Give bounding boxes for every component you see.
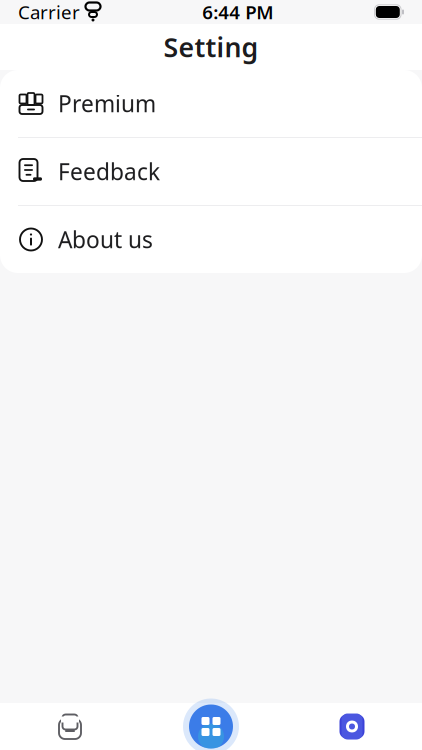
staticText: Setting (163, 29, 258, 65)
staticText: 6:44 PM (202, 0, 273, 24)
button[interactable]: Feedback (0, 138, 422, 205)
staticText: About us (58, 224, 153, 254)
staticText: Carrier (18, 0, 80, 24)
staticText: Premium (58, 88, 156, 118)
button[interactable]: Apps (140, 703, 282, 750)
staticText: Feedback (58, 156, 160, 186)
button[interactable]: Settings (282, 703, 422, 750)
button[interactable]: Home (0, 703, 140, 750)
button[interactable]: About us (0, 206, 422, 273)
button[interactable]: Premium (0, 70, 422, 137)
